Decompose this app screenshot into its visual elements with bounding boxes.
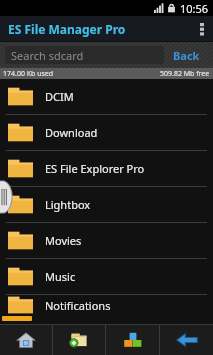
staticText: Movies	[45, 233, 82, 248]
button[interactable]	[2, 316, 32, 321]
staticText: Search sdcard	[11, 48, 84, 63]
button[interactable]: Back	[164, 42, 208, 68]
button[interactable]: Apps	[106, 325, 159, 355]
staticText: ES File Explorer Pro	[45, 161, 145, 176]
staticText: 10:56	[180, 1, 209, 16]
staticText: DCIM	[45, 89, 74, 104]
staticText: Back	[173, 48, 200, 63]
button[interactable]: More options	[191, 16, 213, 42]
button[interactable]: ES File Manager Pro	[0, 16, 213, 42]
staticText: ES File Manager Pro	[8, 21, 126, 37]
button[interactable]: Home	[0, 325, 52, 355]
button[interactable]: Back	[160, 325, 213, 355]
button[interactable]: Download	[0, 115, 213, 151]
staticText: Download	[45, 125, 98, 140]
button[interactable]: Music	[0, 259, 213, 295]
staticText: Notifications	[45, 298, 111, 313]
button[interactable]: DCIM	[0, 79, 213, 115]
button[interactable]: Open navigation drawer	[0, 181, 11, 213]
staticText: Lightbox	[45, 197, 91, 212]
staticText: Music	[45, 269, 76, 284]
staticText: 174.00 Kb used	[3, 69, 54, 79]
button[interactable]: Search sdcard	[5, 46, 164, 64]
button[interactable]: ES File Explorer Pro	[0, 151, 213, 187]
button[interactable]: New folder	[53, 325, 105, 355]
staticText: 509.82 Mb free	[160, 69, 210, 79]
button[interactable]: Lightbox	[0, 187, 213, 223]
button[interactable]: Movies	[0, 223, 213, 259]
button[interactable]: Notifications	[0, 295, 213, 315]
